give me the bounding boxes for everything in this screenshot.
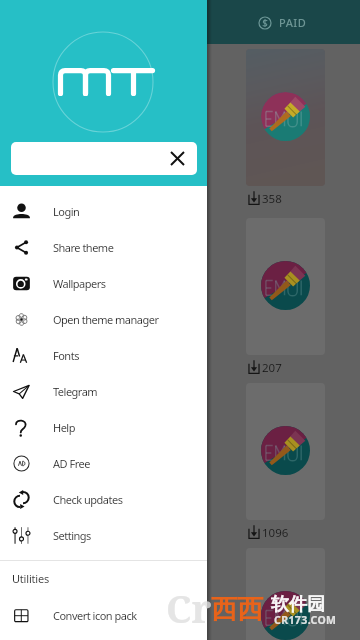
staticText: CR173.COM (274, 613, 337, 627)
button[interactable] (246, 49, 325, 186)
staticText: 1096 (262, 525, 289, 539)
staticText: Login (53, 204, 80, 219)
staticText: Telegram (53, 384, 98, 399)
staticText: Check updates (53, 492, 123, 507)
staticText: Share theme (53, 240, 114, 255)
staticText: Utilities (12, 571, 50, 586)
button[interactable]: Login (0, 193, 207, 229)
button[interactable]: Convert icon pack (0, 597, 207, 633)
other: Downloads (248, 191, 260, 205)
staticText: 软件园 (271, 593, 325, 616)
staticText: Help (53, 420, 75, 435)
button[interactable]: Wallpapers (0, 265, 207, 301)
staticText: 207 (262, 360, 282, 374)
button[interactable]: Settings (0, 517, 207, 553)
staticText: 西西 (211, 593, 263, 626)
staticText: Wallpapers (53, 276, 106, 291)
staticText: Fonts (53, 348, 79, 363)
button[interactable]: Share theme (0, 229, 207, 265)
button[interactable]: Open theme manager (0, 301, 207, 337)
staticText: Settings (53, 528, 91, 543)
other: Clear search (171, 152, 184, 165)
other: Downloads (248, 360, 260, 374)
button[interactable]: Check updates (0, 481, 207, 517)
button[interactable]: Help (0, 409, 207, 445)
staticText: Open theme manager (53, 312, 159, 327)
staticText: PAID (279, 15, 307, 30)
button[interactable]: Telegram (0, 373, 207, 409)
button[interactable] (246, 548, 325, 640)
button[interactable] (246, 218, 325, 355)
button[interactable]: PAID (258, 15, 307, 30)
staticText: 358 (262, 191, 282, 205)
button[interactable]: Fonts (0, 337, 207, 373)
staticText: Cr (166, 582, 212, 634)
button[interactable]: Clear search (11, 142, 197, 175)
button[interactable] (246, 383, 325, 520)
other: Downloads (248, 525, 260, 539)
staticText: AD Free (53, 456, 90, 471)
staticText: Convert icon pack (53, 608, 137, 623)
button[interactable]: AD Free (0, 445, 207, 481)
